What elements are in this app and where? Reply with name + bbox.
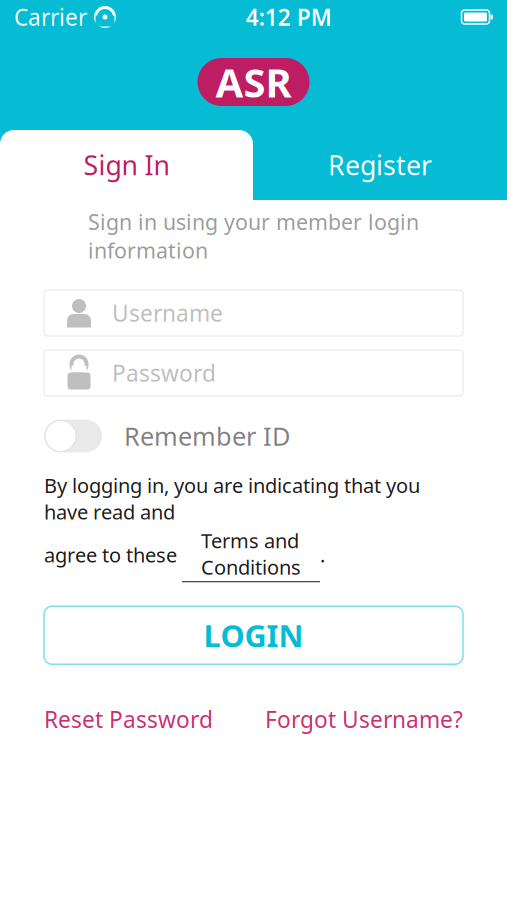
button[interactable]: Register [253,130,507,200]
button[interactable]: Terms and Conditions [182,527,320,582]
staticText: agree to these [44,541,182,568]
staticText: LOGIN [203,615,303,656]
staticText: 4:12 PM [246,2,332,32]
button[interactable]: LOGIN [44,606,463,664]
button[interactable]: Reset Password [44,704,213,734]
staticText: Password [112,358,216,388]
staticText: Carrier [14,2,87,32]
staticText: Sign in using your member login informat… [88,208,419,264]
staticText: Username [112,298,223,328]
staticText: Reset Password [44,704,213,734]
staticText: By logging in, you are indicating that y… [44,472,420,525]
staticText: Register [328,147,432,183]
button[interactable]: Forgot Username? [265,704,463,734]
staticText: ASR [215,55,291,108]
staticText: . [320,541,325,568]
staticText: Forgot Username? [265,704,463,734]
button[interactable]: Remember ID [44,419,290,453]
button[interactable]: Password [44,350,463,396]
button[interactable]: Sign In [0,130,253,200]
staticText: Sign In [83,147,169,183]
button[interactable]: Username [44,290,463,336]
staticText: Remember ID [124,419,290,453]
staticText: Terms and Conditions [201,527,301,580]
